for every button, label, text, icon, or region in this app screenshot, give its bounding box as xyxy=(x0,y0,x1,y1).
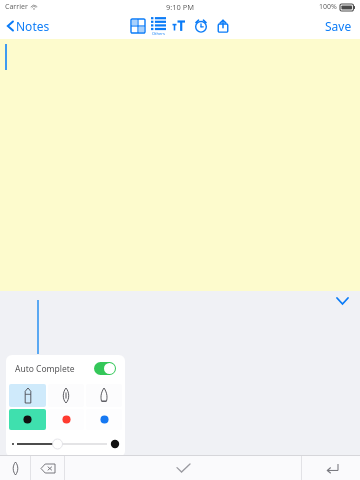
button[interactable]: Pen style 2 xyxy=(86,384,122,407)
staticText: 9:10 PM xyxy=(166,2,195,12)
button[interactable]: Pen style 0 xyxy=(9,384,46,407)
button[interactable]: Color xyxy=(9,409,46,430)
button[interactable]: Save xyxy=(321,15,356,37)
button[interactable]: Pen xyxy=(0,456,30,480)
staticText: Save xyxy=(325,18,352,34)
button[interactable]: Return xyxy=(302,456,360,480)
button[interactable]: Collapse xyxy=(334,293,350,309)
staticText: 100% xyxy=(319,2,337,12)
staticText: Auto Complete xyxy=(15,363,75,375)
button[interactable]: Table xyxy=(129,17,147,35)
button[interactable]: Color xyxy=(86,409,122,430)
staticText: Carrier xyxy=(5,2,28,12)
button[interactable]: Color xyxy=(48,409,84,430)
staticText: Others xyxy=(152,31,165,36)
button[interactable]: Text format xyxy=(170,17,188,35)
button[interactable]: Stroke width xyxy=(11,433,120,455)
button[interactable]: Share xyxy=(214,17,232,35)
button[interactable]: Backspace xyxy=(31,456,64,480)
button[interactable]: Notes xyxy=(4,15,53,37)
button[interactable]: Reminder xyxy=(192,17,210,35)
button[interactable]: Auto Complete xyxy=(6,355,125,382)
button[interactable] xyxy=(0,39,360,291)
button[interactable]: Pen style 1 xyxy=(48,384,84,407)
button[interactable]: Others xyxy=(151,16,166,36)
staticText: Notes xyxy=(16,18,50,34)
button[interactable]: Confirm xyxy=(65,456,301,480)
